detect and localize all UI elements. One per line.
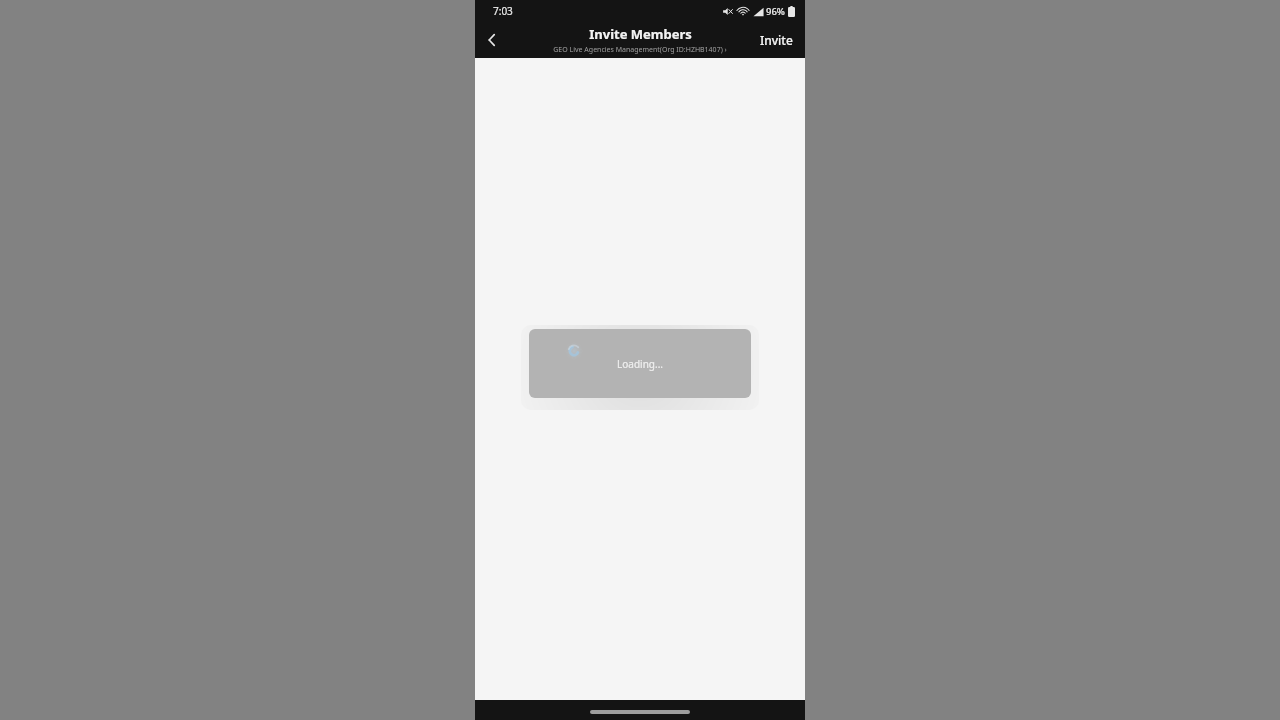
button[interactable]: Back — [475, 23, 509, 57]
staticText: 7:03 — [493, 4, 513, 18]
staticText: 96% — [766, 5, 785, 18]
staticText: Loading... — [617, 357, 663, 371]
button[interactable]: Invite — [754, 28, 799, 52]
staticText: Invite — [760, 32, 793, 48]
button[interactable]: GEO Live Agencies Management(Org ID:HZHB… — [553, 45, 727, 55]
staticText: Invite Members — [589, 25, 692, 43]
staticText: GEO Live Agencies Management(Org ID:HZHB… — [553, 45, 727, 55]
